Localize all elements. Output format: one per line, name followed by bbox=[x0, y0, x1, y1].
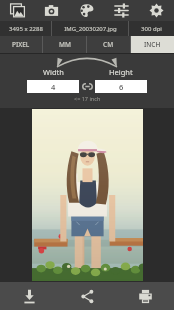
button[interactable]: INCH bbox=[131, 36, 174, 53]
button[interactable]: Print bbox=[116, 282, 174, 310]
staticText: Width bbox=[43, 67, 64, 77]
button[interactable]: Palette bbox=[69, 0, 104, 21]
button[interactable]: CM bbox=[87, 36, 130, 53]
staticText: PIXEL bbox=[12, 40, 30, 49]
staticText: 6 bbox=[119, 82, 124, 92]
staticText: INCH bbox=[144, 40, 161, 49]
button[interactable]: PIXEL bbox=[0, 36, 42, 53]
button[interactable]: 6 bbox=[95, 80, 147, 93]
button[interactable]: Settings bbox=[139, 0, 174, 21]
staticText: <= 17 inch bbox=[74, 95, 101, 102]
button[interactable]: Gallery bbox=[0, 0, 34, 21]
button[interactable]: Download bbox=[0, 282, 58, 310]
staticText: IMG_20030207.jpg bbox=[64, 25, 117, 33]
staticText: 300 dpi bbox=[141, 25, 162, 33]
staticText: 4 bbox=[51, 82, 56, 92]
button[interactable]: Share bbox=[58, 282, 116, 310]
button[interactable]: Lock aspect ratio bbox=[79, 79, 95, 93]
button[interactable]: MM bbox=[43, 36, 86, 53]
staticText: MM bbox=[59, 40, 71, 49]
button[interactable]: Adjust bbox=[104, 0, 139, 21]
button[interactable]: Camera bbox=[34, 0, 69, 21]
staticText: CM bbox=[103, 40, 114, 49]
button[interactable]: 4 bbox=[27, 80, 79, 93]
staticText: 3495 x 2288 bbox=[9, 25, 43, 33]
staticText: Height bbox=[109, 67, 133, 77]
